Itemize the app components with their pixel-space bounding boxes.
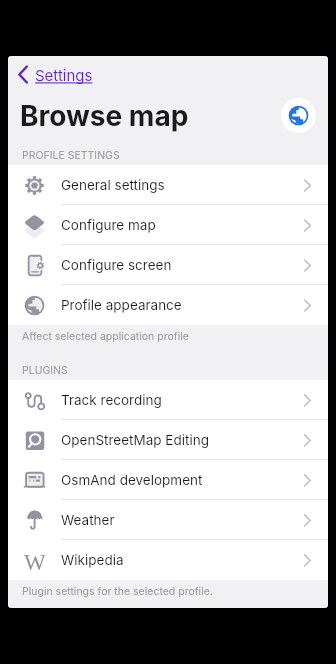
button[interactable]: Track recording	[8, 380, 328, 420]
button[interactable]: Configure map	[8, 205, 328, 245]
staticText: Affect selected application profile	[22, 330, 189, 343]
staticText: Track recording	[61, 392, 162, 408]
button[interactable]: Settings	[8, 56, 328, 93]
staticText: Configure screen	[61, 257, 172, 273]
button[interactable]: Change profile	[281, 98, 316, 133]
staticText: Plugin settings for the selected profile…	[22, 585, 213, 598]
button[interactable]: Profile appearance	[8, 285, 328, 325]
staticText: General settings	[61, 177, 165, 193]
button[interactable]: W	[8, 540, 328, 580]
staticText: Profile appearance	[61, 297, 182, 313]
staticText: PLUGINS	[22, 364, 68, 377]
staticText: Weather	[61, 512, 115, 528]
button[interactable]: OsmAnd development	[8, 460, 328, 500]
staticText: OpenStreetMap Editing	[61, 432, 209, 448]
staticText: Configure map	[61, 217, 156, 233]
staticText: Browse map	[20, 99, 189, 133]
button[interactable]: Configure screen	[8, 245, 328, 285]
staticText: Wikipedia	[61, 552, 124, 568]
staticText: OsmAnd development	[61, 472, 203, 488]
button[interactable]: General settings	[8, 165, 328, 205]
staticText: W	[24, 550, 45, 571]
staticText: PROFILE SETTINGS	[22, 149, 120, 162]
button[interactable]: OpenStreetMap Editing	[8, 420, 328, 460]
button[interactable]: Weather	[8, 500, 328, 540]
staticText: Settings	[35, 66, 93, 84]
